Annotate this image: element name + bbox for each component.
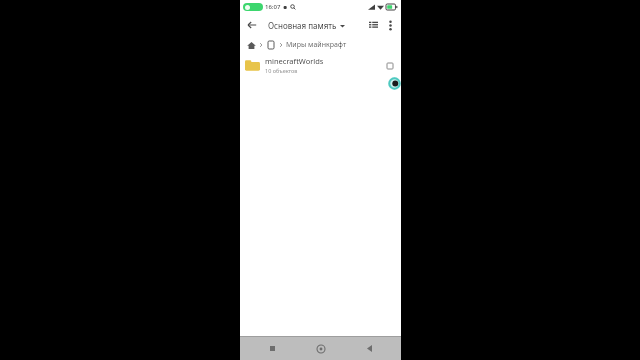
staticText: 16:07 [265,3,281,11]
button[interactable]: Назад [244,17,260,33]
button[interactable]: Последние приложения [255,337,289,360]
button[interactable]: Основная память [268,20,345,31]
staticText: 10 объектов [265,67,298,74]
button[interactable]: Вид списка [364,16,382,34]
button[interactable]: minecraftWorlds [240,54,401,76]
button[interactable]: Выбрать [383,59,396,72]
staticText: minecraftWorlds [265,56,324,66]
button[interactable]: Миры майнкрафт [286,40,347,50]
button[interactable]: Главный экран [304,337,338,360]
staticText: Основная память [268,20,337,31]
button[interactable]: Домой [245,39,257,51]
button[interactable]: Назад [352,337,386,360]
button[interactable]: Устройство [265,39,277,51]
button[interactable]: Ещё [382,17,398,33]
